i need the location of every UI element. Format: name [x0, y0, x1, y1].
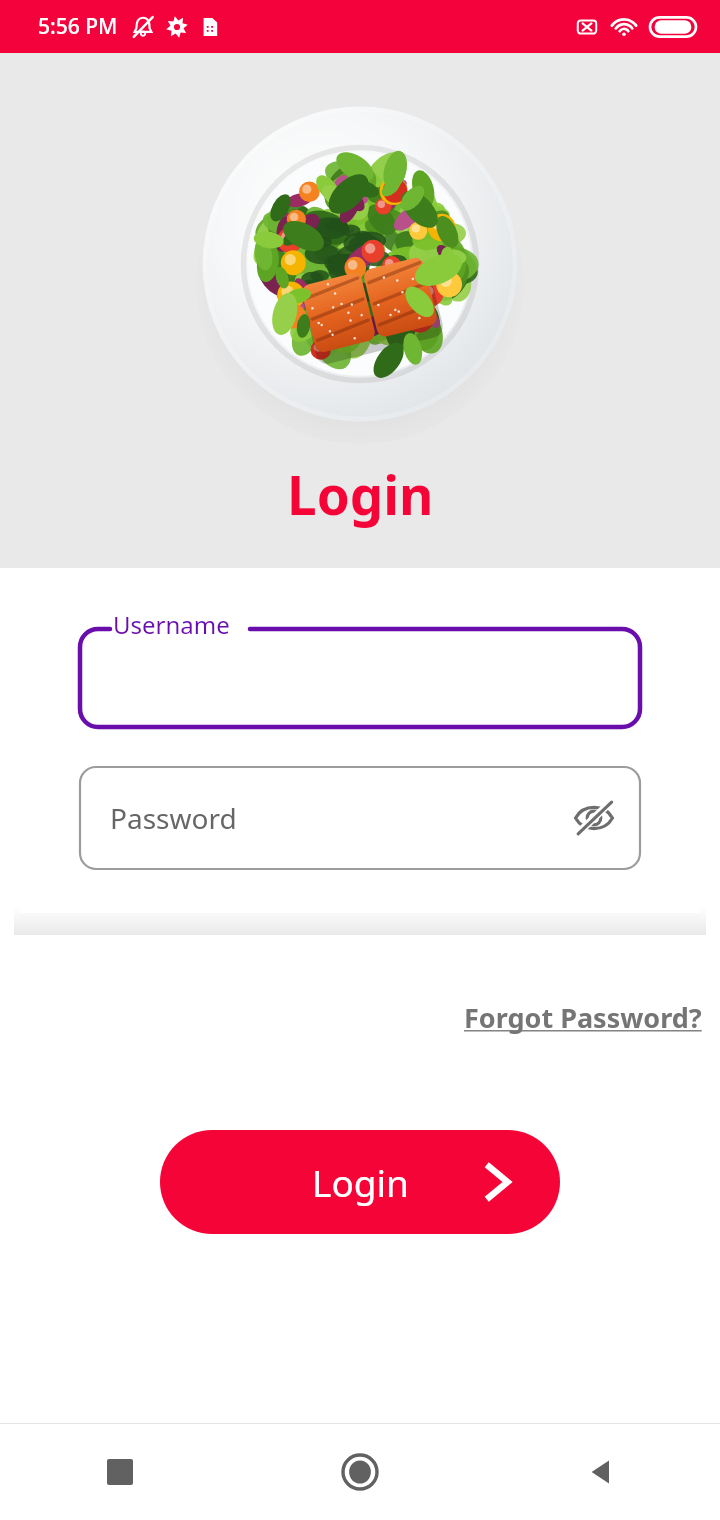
staticText: Forgot Password?: [464, 999, 702, 1036]
button[interactable]: Username: [80, 617, 640, 727]
button[interactable]: Recents: [0, 1424, 240, 1520]
button[interactable]: Home: [240, 1424, 480, 1520]
staticText: Password: [110, 799, 237, 837]
button[interactable]: Show password: [566, 790, 622, 846]
button[interactable]: Forgot Password?: [462, 993, 704, 1042]
button[interactable]: Login: [160, 1130, 560, 1234]
button[interactable]: Password: [80, 767, 640, 869]
button[interactable]: Back: [480, 1424, 720, 1520]
staticText: Login: [287, 458, 434, 530]
staticText: Username: [113, 608, 230, 641]
staticText: 5:56 PM: [38, 12, 118, 41]
staticText: Login: [312, 1157, 409, 1207]
